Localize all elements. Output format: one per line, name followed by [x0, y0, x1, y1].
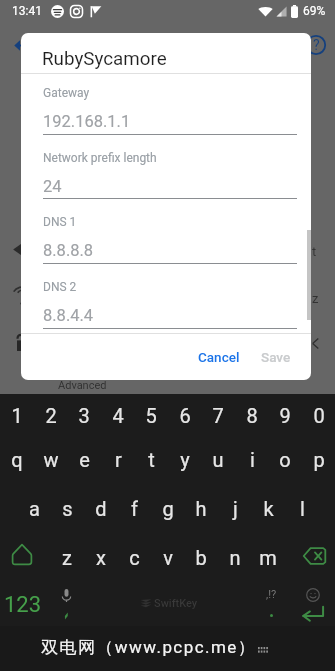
staticText: t: [312, 244, 317, 259]
staticText: 8: [246, 404, 258, 427]
button[interactable]: v: [151, 532, 185, 579]
staticText: DNS 2: [43, 280, 77, 294]
staticText: ,!?: [266, 588, 277, 601]
staticText: p: [313, 448, 325, 471]
staticText: 192.168.1.1: [43, 112, 131, 131]
button[interactable]: g: [151, 485, 185, 532]
button[interactable]: m: [251, 532, 285, 579]
staticText: 5: [145, 404, 157, 427]
staticText: i: [250, 448, 255, 471]
staticText: 1: [11, 404, 23, 427]
button[interactable]: Delete: [302, 532, 335, 579]
button[interactable]: i: [235, 437, 269, 484]
button[interactable]: Cancel: [189, 342, 249, 372]
button[interactable]: k: [251, 485, 285, 532]
button[interactable]: 6: [168, 394, 202, 441]
staticText: Advanced: [58, 379, 107, 392]
button[interactable]: Voice input: [45, 580, 87, 627]
staticText: w: [43, 448, 59, 471]
button[interactable]: 4: [101, 394, 135, 441]
button[interactable]: n: [218, 532, 252, 579]
staticText: SwiftKey: [154, 597, 198, 610]
staticText: l: [300, 497, 305, 520]
button[interactable]: ,!?: [250, 580, 292, 627]
button[interactable]: d: [84, 485, 118, 532]
button[interactable]: 7: [201, 394, 235, 441]
staticText: 双电网（www.pcpc.me）: [41, 637, 257, 658]
staticText: 69%: [303, 4, 326, 18]
button[interactable]: 0: [302, 394, 335, 441]
staticText: x: [96, 546, 106, 569]
staticText: t: [148, 448, 155, 471]
staticText: 13:41: [12, 4, 42, 18]
button[interactable]: w: [34, 437, 68, 484]
staticText: 7: [212, 404, 224, 427]
staticText: v: [163, 546, 173, 569]
staticText: b: [195, 546, 207, 569]
staticText: q: [11, 448, 23, 471]
button[interactable]: y: [168, 437, 202, 484]
button[interactable]: 3: [67, 394, 101, 441]
staticText: h: [195, 497, 207, 520]
staticText: k: [263, 497, 274, 520]
staticText: g: [162, 497, 174, 520]
button[interactable]: e: [67, 437, 101, 484]
staticText: Network prefix length: [43, 151, 157, 165]
staticText: 8.8.4.4: [43, 306, 94, 325]
button[interactable]: b: [184, 532, 218, 579]
staticText: z: [62, 546, 72, 569]
button[interactable]: q: [0, 437, 34, 484]
staticText: j: [233, 497, 238, 520]
staticText: 3: [78, 404, 90, 427]
button[interactable]: a: [17, 485, 51, 532]
staticText: n: [229, 546, 241, 569]
button[interactable]: t: [134, 437, 168, 484]
button[interactable]: x: [84, 532, 118, 579]
staticText: c: [129, 546, 140, 569]
staticText: Gateway: [43, 86, 90, 100]
button[interactable]: j: [218, 485, 252, 532]
button[interactable]: Shift: [5, 532, 39, 579]
button[interactable]: h: [184, 485, 218, 532]
button[interactable]: 123: [0, 580, 45, 627]
staticText: m: [259, 546, 277, 569]
staticText: u: [212, 448, 224, 471]
staticText: 6: [179, 404, 191, 427]
staticText: z: [312, 291, 319, 306]
staticText: d: [95, 497, 107, 520]
button[interactable]: 2: [34, 394, 68, 441]
staticText: o: [279, 448, 291, 471]
staticText: RubySycamore: [42, 48, 167, 70]
staticText: 2: [45, 404, 57, 427]
staticText: 123: [4, 592, 42, 618]
button[interactable]: z: [50, 532, 84, 579]
button[interactable]: Enter: [290, 580, 335, 627]
button[interactable]: 1: [0, 394, 34, 441]
staticText: r: [115, 448, 122, 471]
button[interactable]: u: [201, 437, 235, 484]
staticText: f: [131, 497, 138, 520]
button[interactable]: r: [101, 437, 135, 484]
button[interactable]: p: [302, 437, 335, 484]
button[interactable]: 8: [235, 394, 269, 441]
staticText: DNS 1: [43, 215, 77, 229]
button[interactable]: l: [285, 485, 319, 532]
staticText: Save: [261, 349, 291, 365]
button[interactable]: o: [268, 437, 302, 484]
staticText: e: [79, 448, 90, 471]
staticText: s: [62, 497, 73, 520]
button[interactable]: 9: [268, 394, 302, 441]
button[interactable]: 5: [134, 394, 168, 441]
button[interactable]: c: [117, 532, 151, 579]
staticText: Cancel: [198, 349, 240, 365]
staticText: 0: [313, 404, 325, 427]
staticText: 4: [112, 404, 124, 427]
staticText: 9: [279, 404, 291, 427]
button[interactable]: Space: [87, 580, 250, 627]
staticText: ?: [313, 37, 320, 53]
staticText: 24: [43, 177, 62, 196]
button[interactable]: s: [50, 485, 84, 532]
button[interactable]: Save: [252, 342, 300, 372]
staticText: a: [29, 497, 40, 520]
button[interactable]: f: [117, 485, 151, 532]
